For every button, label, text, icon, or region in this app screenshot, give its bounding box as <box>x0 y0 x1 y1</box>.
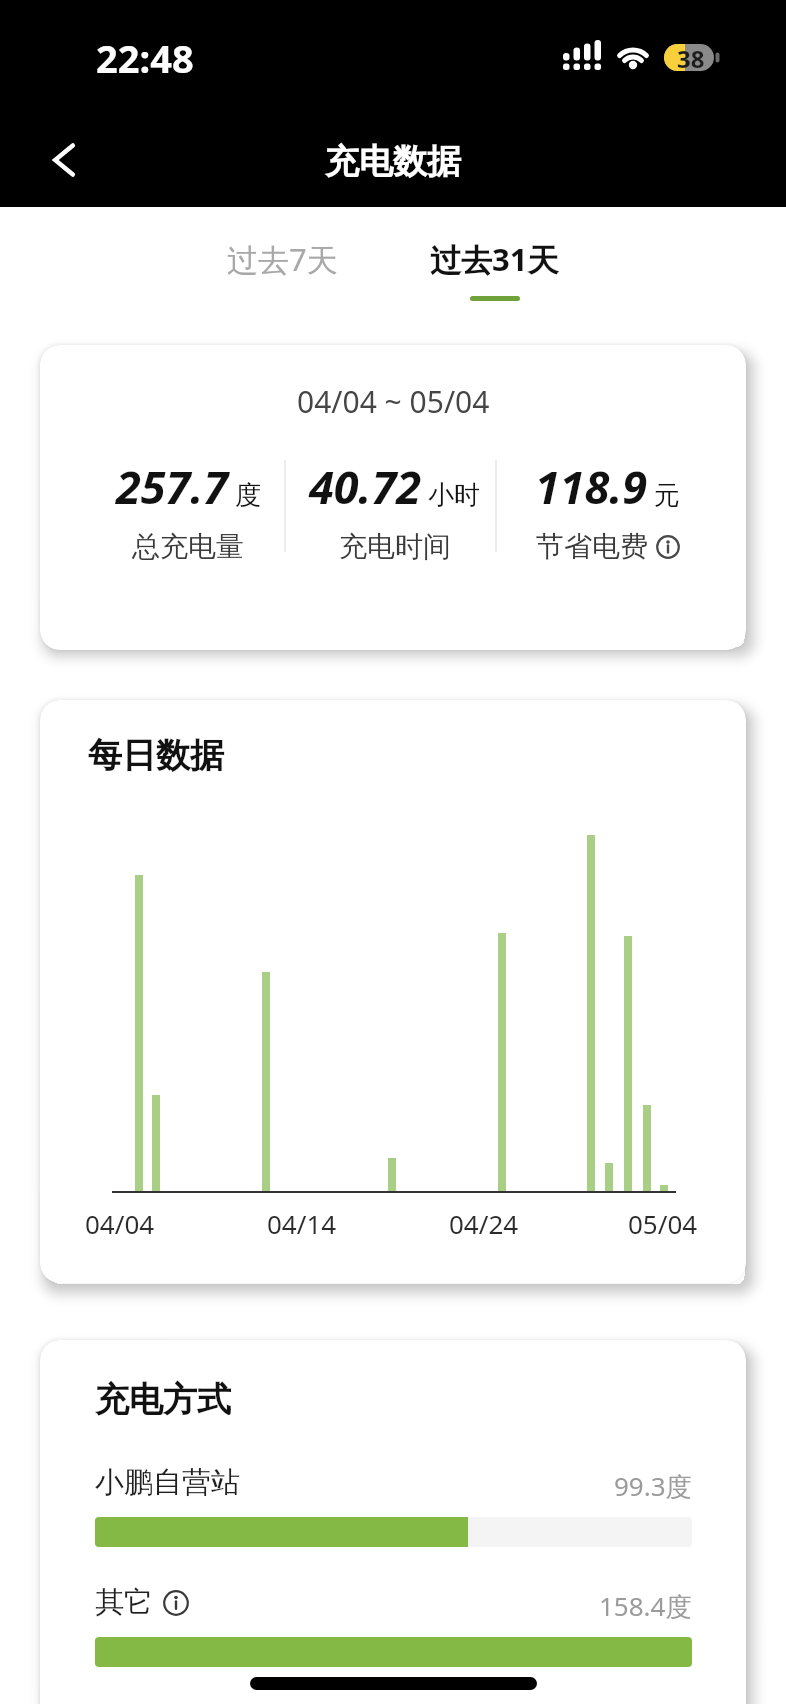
staticText: 度 <box>235 479 261 512</box>
staticText: 每日数据 <box>88 734 224 777</box>
button[interactable]: 过去7天 <box>217 238 348 280</box>
staticText: 158.4度 <box>599 1588 692 1624</box>
staticText: 元 <box>654 479 680 512</box>
staticText: 节省电费 <box>536 529 648 564</box>
staticText: 充电时间 <box>339 529 451 564</box>
staticText: 小鹏自营站 <box>95 1464 240 1501</box>
button[interactable] <box>656 535 680 559</box>
staticText: 充电数据 <box>325 140 461 183</box>
staticText: 过去7天 <box>227 238 338 280</box>
button[interactable] <box>163 1590 189 1616</box>
staticText: 40.72 <box>309 456 422 517</box>
staticText: 充电方式 <box>95 1378 231 1421</box>
staticText: 118.9 <box>535 456 648 517</box>
staticText: 99.3度 <box>614 1468 692 1504</box>
staticText: 04/14 <box>267 1206 337 1241</box>
staticText: 38 <box>677 42 705 75</box>
staticText: 小时 <box>428 479 480 512</box>
button[interactable]: 过去31天 <box>420 238 569 301</box>
staticText: 04/04 <box>85 1206 155 1241</box>
button[interactable] <box>36 132 92 188</box>
staticText: 257.7 <box>116 456 229 517</box>
staticText: 04/24 <box>449 1206 519 1241</box>
staticText: 其它 <box>95 1584 153 1621</box>
staticText: 22:48 <box>96 32 194 84</box>
staticText: 05/04 <box>628 1206 698 1241</box>
staticText: 过去31天 <box>430 238 559 280</box>
staticText: 总充电量 <box>132 529 244 564</box>
staticText: 04/04 ~ 05/04 <box>297 381 490 422</box>
